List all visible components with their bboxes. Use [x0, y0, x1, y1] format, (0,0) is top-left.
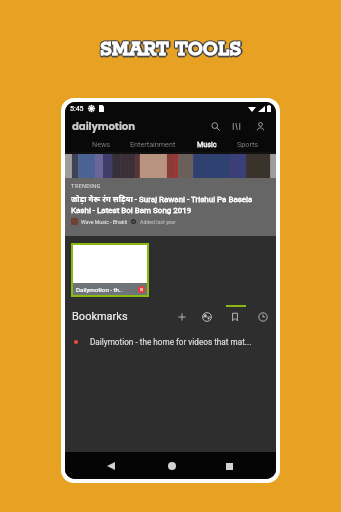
- staticText: TRENDING: [71, 183, 101, 189]
- button[interactable]: Entertainment: [130, 136, 176, 152]
- button[interactable]: Music: [197, 136, 217, 152]
- staticText: SMART TOOLS: [100, 40, 242, 64]
- button[interactable]: Home: [161, 455, 183, 477]
- button[interactable]: Dailymotion - th..: [73, 245, 147, 295]
- button[interactable]: Bookmarks: [72, 310, 128, 323]
- staticText: SMART TOOLS: [102, 38, 244, 62]
- staticText: Sports: [237, 140, 259, 148]
- button[interactable]: Browse web: [198, 308, 216, 326]
- button[interactable]: Search: [207, 118, 223, 134]
- staticText: 5:45: [70, 105, 84, 113]
- button[interactable]: History: [254, 308, 272, 326]
- staticText: जोड़ा गेरू रंग सड़िया - Suraj Rawani - T…: [71, 193, 270, 215]
- staticText: News: [92, 140, 111, 148]
- button[interactable]: Sports: [237, 136, 259, 152]
- staticText: Dailymotion - th..: [76, 286, 137, 293]
- staticText: Entertainment: [130, 140, 176, 148]
- staticText: Added last year: [140, 219, 176, 225]
- button[interactable]: Dailymotion - the home for videos that m…: [65, 332, 276, 352]
- staticText: SMART TOOLS: [99, 39, 241, 63]
- button[interactable]: Back: [100, 455, 122, 477]
- staticText: SMART TOOLS: [101, 39, 243, 63]
- staticText: Bookmarks: [72, 310, 128, 323]
- staticText: SMART TOOLS: [100, 37, 242, 61]
- staticText: Dailymotion - the home for videos that m…: [90, 337, 252, 347]
- staticText: dailymotion: [72, 119, 135, 133]
- staticText: SMART TOOLS: [99, 37, 241, 61]
- staticText: SMART TOOLS: [99, 38, 241, 62]
- button[interactable]: Library: [228, 118, 244, 134]
- other: Close tab: [138, 286, 145, 293]
- staticText: SMART TOOLS: [101, 37, 243, 61]
- staticText: SMART TOOLS: [100, 38, 242, 62]
- button[interactable]: New tab: [173, 308, 191, 326]
- button[interactable]: Bookmarks: [226, 308, 244, 326]
- staticText: Music: [197, 140, 217, 148]
- button[interactable]: Recents: [218, 455, 240, 477]
- button[interactable]: News: [92, 136, 111, 152]
- staticText: Wave Music - Bhakti: [81, 219, 128, 225]
- button[interactable]: Profile: [252, 118, 268, 134]
